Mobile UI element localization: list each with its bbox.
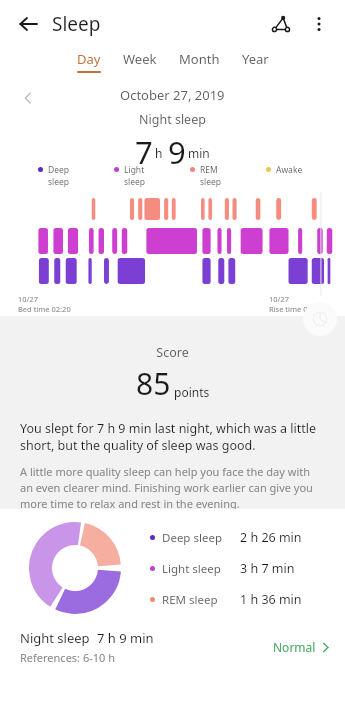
staticText: 7 h 9 min [97, 629, 154, 647]
staticText: Score [0, 344, 345, 361]
button[interactable]: Week [119, 48, 161, 75]
staticText: Light [124, 164, 145, 176]
staticText: References: 6-10 h [20, 650, 115, 665]
staticText: Sleep [52, 11, 101, 37]
staticText: 1 h 36 min [240, 591, 302, 608]
staticText: sleep [124, 176, 146, 188]
button[interactable]: Year [238, 48, 273, 75]
staticText: sleep [200, 176, 222, 188]
button[interactable]: Night sleep [0, 619, 345, 675]
staticText: Month [179, 50, 220, 68]
staticText: Night sleep [139, 111, 206, 128]
button[interactable]: Month [175, 48, 224, 75]
staticText: Week [123, 50, 157, 68]
staticText: 85 [136, 363, 171, 404]
staticText: Awake [276, 164, 303, 176]
staticText: A little more quality sleep can help you… [20, 464, 325, 509]
staticText: 3 h 7 min [240, 560, 295, 577]
staticText: h [155, 145, 163, 161]
staticText: Light sleep [162, 561, 221, 577]
staticText: Year [242, 50, 269, 68]
staticText: Night sleep [20, 629, 90, 647]
staticText: Deep [48, 164, 70, 176]
staticText: Normal [273, 639, 316, 655]
staticText: 10/27 [269, 294, 289, 304]
button[interactable]: Back [10, 6, 46, 42]
staticText: REM sleep [162, 592, 218, 608]
staticText: min [188, 145, 210, 161]
staticText: Bed time 02:20 [18, 304, 71, 314]
button[interactable]: Share [263, 6, 299, 42]
staticText: 9 [168, 131, 186, 164]
button[interactable]: Previous day [14, 84, 42, 112]
staticText: 2 h 26 min [240, 529, 302, 546]
button[interactable]: Day [73, 48, 105, 75]
staticText: points [174, 384, 210, 400]
staticText: Rise time 09:29 [269, 304, 323, 314]
staticText: You slept for 7 h 9 min last night, whic… [20, 420, 325, 454]
staticText: Day [77, 50, 101, 68]
staticText: 10/27 [18, 294, 38, 304]
staticText: REM [200, 164, 218, 176]
staticText: sleep [48, 176, 70, 188]
staticText: 7 [135, 131, 153, 164]
staticText: October 27, 2019 [120, 86, 225, 104]
staticText: Deep sleep [162, 530, 222, 546]
button[interactable]: More options [301, 6, 337, 42]
